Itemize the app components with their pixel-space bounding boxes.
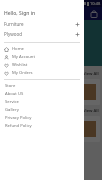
staticText: Store [5, 83, 16, 89]
button[interactable]: Refund Policy [0, 122, 84, 130]
staticText: My Orders [12, 70, 33, 76]
staticText: Wishlist [12, 62, 28, 68]
button[interactable]: My Orders [0, 69, 84, 77]
staticText: About US [5, 91, 24, 97]
button[interactable] [2, 79, 34, 105]
button[interactable]: Plywood [0, 29, 84, 39]
button[interactable]: About US [0, 90, 84, 98]
staticText: View All [83, 71, 99, 76]
staticText: Home [12, 46, 24, 52]
button[interactable] [69, 79, 100, 105]
staticText: Featured [3, 107, 26, 114]
staticText: Service [5, 99, 19, 105]
button[interactable]: Service [0, 98, 84, 106]
button[interactable]: Hello, Sign in [0, 7, 84, 19]
button[interactable] [36, 79, 67, 105]
button[interactable]: Cart [89, 9, 99, 19]
button[interactable]: Gallery [0, 106, 84, 114]
staticText: Gallery [5, 107, 19, 113]
button[interactable]: Store [0, 82, 84, 90]
button[interactable]: Wishlist [0, 61, 84, 69]
staticText: Category [3, 70, 26, 77]
staticText: Hello, Sign in [4, 10, 36, 17]
button[interactable]: My Account [0, 53, 84, 61]
staticText: View All [83, 108, 99, 113]
staticText: Privacy Policy [5, 115, 32, 121]
button[interactable]: Furniture [0, 19, 84, 29]
button[interactable]: Privacy Policy [0, 114, 84, 122]
button[interactable]: Home [0, 45, 84, 53]
staticText: 10:48 [90, 1, 101, 6]
button[interactable] [2, 116, 34, 142]
staticText: Plywood [4, 31, 22, 37]
staticText: Refund Policy [5, 123, 32, 129]
staticText: Furniture [4, 21, 24, 27]
button[interactable] [69, 116, 100, 142]
staticText: My Account [12, 54, 35, 60]
